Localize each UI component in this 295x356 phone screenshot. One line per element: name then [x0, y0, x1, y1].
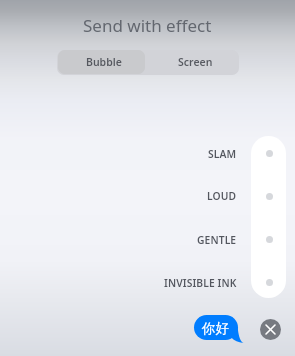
staticText: Send with effect: [83, 14, 212, 37]
staticText: Screen: [178, 55, 213, 69]
staticText: Bubble: [86, 55, 122, 69]
staticText: LOUD: [207, 189, 237, 203]
staticText: INVISIBLE INK: [164, 276, 237, 290]
button[interactable]: LOUD: [0, 185, 237, 207]
button[interactable]: Bubble: [58, 50, 145, 74]
staticText: GENTLE: [197, 233, 237, 247]
button[interactable]: Screen: [148, 50, 239, 74]
staticText: 你好: [202, 320, 229, 337]
button[interactable]: 你好: [194, 315, 237, 341]
button[interactable]: GENTLE: [0, 229, 237, 251]
button[interactable]: Close: [260, 319, 281, 340]
button[interactable]: INVISIBLE INK: [0, 272, 237, 294]
button[interactable]: SLAM: [0, 143, 237, 165]
staticText: SLAM: [208, 147, 237, 161]
